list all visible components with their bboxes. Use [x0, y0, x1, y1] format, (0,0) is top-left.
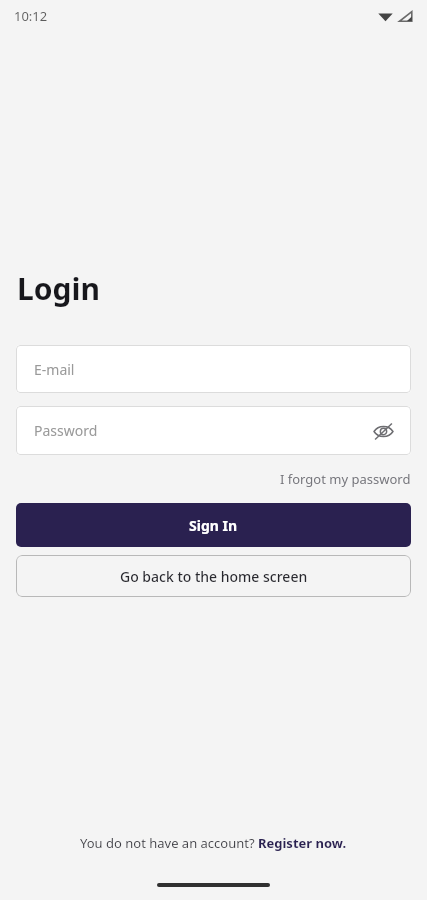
button[interactable]: I forgot my password	[280, 468, 411, 490]
staticText: E-mail	[34, 360, 75, 379]
button[interactable]: Show password	[367, 415, 399, 447]
staticText: You do not have an account? Register now…	[80, 834, 347, 852]
button[interactable]: You do not have an account? Register now…	[80, 834, 347, 852]
button[interactable]: Password	[16, 406, 411, 455]
staticText: I forgot my password	[280, 470, 411, 488]
button[interactable]: Sign In	[16, 503, 411, 547]
staticText: Sign In	[189, 516, 238, 535]
staticText: Go back to the home screen	[120, 567, 308, 586]
staticText: Login	[17, 268, 100, 309]
button[interactable]: E-mail	[16, 345, 411, 393]
staticText: Password	[34, 421, 98, 440]
staticText: 10:12	[14, 7, 48, 25]
button[interactable]: Go back to the home screen	[16, 555, 411, 597]
